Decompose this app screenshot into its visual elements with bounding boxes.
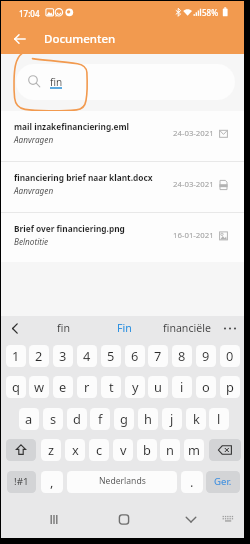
button[interactable]: w (29, 376, 49, 398)
button[interactable]: 3 (53, 345, 73, 367)
staticText: Nederlands (99, 475, 146, 487)
staticText: 0 (226, 347, 234, 364)
staticText: Documenten (44, 31, 116, 47)
staticText: Ger. (214, 475, 232, 488)
button[interactable]: 9 (196, 345, 216, 367)
button[interactable]: y (125, 376, 145, 398)
button[interactable]: u (148, 376, 168, 398)
button[interactable]: c (89, 439, 109, 461)
button[interactable]: Previous suggestions (1, 316, 29, 341)
button[interactable]: More options (219, 316, 243, 341)
button[interactable]: Nederlands (67, 471, 177, 493)
button[interactable]: k (186, 408, 206, 430)
button[interactable]: mail inzakefinanciering.eml (1, 111, 244, 161)
button[interactable]: fin (33, 316, 93, 341)
staticText: 16-01-2021 (173, 230, 214, 241)
staticText: p (226, 378, 234, 395)
button[interactable]: 4 (77, 345, 97, 367)
staticText: 4 (83, 347, 91, 364)
staticText: w (34, 378, 45, 395)
button[interactable]: 8 (172, 345, 192, 367)
staticText: j (170, 410, 174, 427)
staticText: 5 (107, 347, 115, 364)
staticText: t (109, 378, 114, 395)
button[interactable]: Brief over financiering.png (1, 213, 244, 262)
staticText: Aanvragen (14, 134, 54, 145)
button[interactable]: j (162, 408, 182, 430)
staticText: a (25, 410, 33, 427)
button[interactable]: Backspace (209, 439, 241, 461)
button[interactable]: m (184, 439, 204, 461)
button[interactable]: 6 (125, 345, 145, 367)
button[interactable]: f (90, 408, 110, 430)
button[interactable]: q (6, 376, 26, 398)
staticText: 7 (154, 347, 162, 364)
button[interactable]: fin (16, 64, 235, 100)
staticText: o (202, 378, 210, 395)
staticText: b (143, 441, 151, 458)
button[interactable]: Ger. (206, 471, 240, 493)
staticText: 3 (59, 347, 67, 364)
staticText: 9 (202, 347, 210, 364)
button[interactable]: l (209, 408, 229, 430)
staticText: Aanvragen (14, 185, 54, 196)
button[interactable]: z (41, 439, 61, 461)
staticText: g (120, 410, 128, 427)
button[interactable]: !#1 (7, 471, 36, 493)
staticText: z (48, 441, 55, 458)
button[interactable]: 5 (101, 345, 121, 367)
staticText: d (73, 410, 81, 427)
button[interactable]: n (160, 439, 180, 461)
button[interactable]: Hide keyboard (173, 501, 209, 538)
button[interactable]: e (53, 376, 73, 398)
button[interactable]: g (114, 408, 134, 430)
button[interactable]: financiering brief naar klant.docx (1, 162, 244, 212)
button[interactable]: financiële (157, 316, 217, 341)
staticText: m (188, 441, 200, 458)
button[interactable]: b (137, 439, 157, 461)
button[interactable]: h (138, 408, 158, 430)
staticText: 8 (178, 347, 186, 364)
button[interactable]: i (172, 376, 192, 398)
button[interactable]: 7 (148, 345, 168, 367)
staticText: h (144, 410, 152, 427)
staticText: 6 (131, 347, 139, 364)
button[interactable]: Fin (94, 316, 154, 341)
button[interactable]: x (65, 439, 85, 461)
staticText: fin (57, 321, 70, 335)
button[interactable]: p (220, 376, 240, 398)
button[interactable]: Home (106, 501, 142, 538)
button[interactable]: Shift (6, 439, 36, 461)
button[interactable]: Recents (36, 501, 72, 538)
staticText: x (72, 441, 79, 458)
staticText: Fin (117, 321, 132, 335)
button[interactable]: 2 (29, 345, 49, 367)
staticText: Brief over financiering.png (14, 223, 125, 234)
staticText: 24-03-2021 (173, 128, 214, 139)
button[interactable]: , (41, 471, 63, 493)
button[interactable]: r (77, 376, 97, 398)
staticText: y (132, 378, 139, 395)
staticText: , (50, 473, 54, 490)
staticText: Belnotitie (14, 236, 49, 247)
staticText: n (166, 441, 174, 458)
staticText: financiële (163, 321, 211, 335)
button[interactable]: 0 (220, 345, 240, 367)
staticText: u (154, 378, 162, 395)
staticText: f (98, 410, 103, 427)
staticText: e (59, 378, 67, 395)
button[interactable]: a (19, 408, 39, 430)
button[interactable]: d (67, 408, 87, 430)
staticText: l (217, 410, 221, 427)
button[interactable]: Keyboard (210, 501, 246, 538)
staticText: r (84, 378, 90, 395)
staticText: fin (50, 75, 63, 89)
button[interactable]: Back (6, 23, 34, 54)
button[interactable]: o (196, 376, 216, 398)
button[interactable]: v (113, 439, 133, 461)
button[interactable]: s (43, 408, 63, 430)
button[interactable]: . (181, 471, 203, 493)
button[interactable]: 1 (6, 345, 26, 367)
button[interactable]: t (101, 376, 121, 398)
staticText: k (193, 410, 200, 427)
